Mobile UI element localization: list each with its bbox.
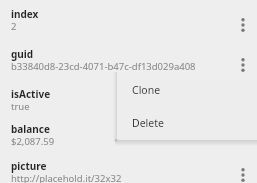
staticText: balance <box>11 122 50 136</box>
button[interactable]: More options for picture <box>232 162 254 183</box>
staticText: Delete <box>132 116 164 130</box>
staticText: isActive <box>11 87 51 101</box>
staticText: http://placehold.it/32x32 <box>11 172 226 183</box>
staticText: b33840d8-23cd-4071-b47c-df13d029a408 <box>11 60 226 73</box>
staticText: true <box>11 100 226 113</box>
staticText: index <box>11 7 39 21</box>
button[interactable]: More options for guid <box>232 52 254 78</box>
button[interactable]: Delete <box>117 106 257 140</box>
staticText: picture <box>11 159 47 173</box>
staticText: 2 <box>11 20 226 33</box>
staticText: Clone <box>132 83 161 97</box>
button[interactable]: More options for index <box>232 12 254 38</box>
button[interactable]: Clone <box>117 73 257 106</box>
staticText: $2,087.59 <box>11 135 226 148</box>
staticText: guid <box>11 47 34 61</box>
